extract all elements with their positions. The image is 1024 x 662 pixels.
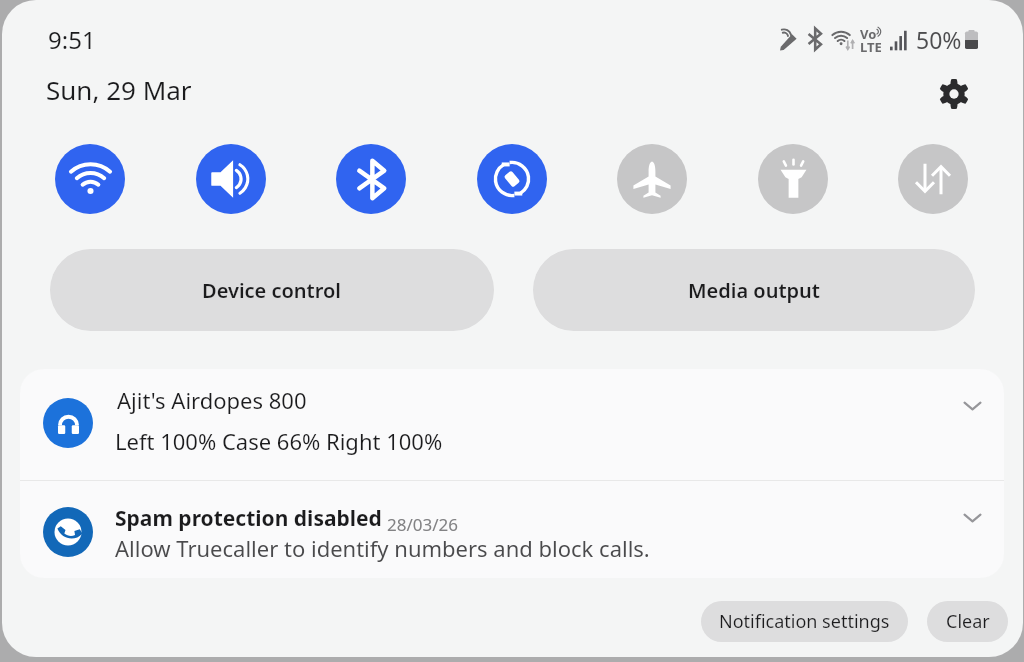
button[interactable]: Ajit's Airdopes 800 [20,369,1004,480]
staticText: Ajit's Airdopes 800 [117,385,307,415]
button[interactable]: Device control [50,249,494,331]
staticText: Spam protection disabled [115,504,382,533]
button[interactable]: Spam protection disabled [20,481,1004,578]
button[interactable]: Clear [927,601,1008,642]
staticText: Media output [688,277,820,304]
staticText: Notification settings [719,609,890,634]
staticText: LTE [860,38,882,56]
staticText: Allow Truecaller to identify numbers and… [115,533,650,563]
button[interactable]: Airplane mode [617,144,687,214]
button[interactable]: Expand [950,384,994,428]
button[interactable]: Expand [950,496,994,540]
staticText: Left 100% Case 66% Right 100% [115,426,443,456]
staticText: Clear [946,609,990,634]
staticText: Device control [202,277,342,304]
button[interactable]: Settings [932,72,976,116]
button[interactable]: Bluetooth [336,144,406,214]
staticText: Vo [860,25,877,43]
button[interactable]: Sound [196,144,266,214]
staticText: Sun, 29 Mar [46,72,192,107]
staticText: 50% [916,24,962,55]
button[interactable]: Wi-Fi [55,144,125,214]
staticText: 28/03/26 [387,513,458,536]
button[interactable]: Flashlight [758,144,828,214]
button[interactable]: Notification settings [701,601,908,642]
button[interactable]: Auto rotate [477,144,547,214]
button[interactable]: Media output [533,249,975,331]
staticText: 9:51 [48,23,96,56]
button[interactable]: Mobile data [898,144,968,214]
